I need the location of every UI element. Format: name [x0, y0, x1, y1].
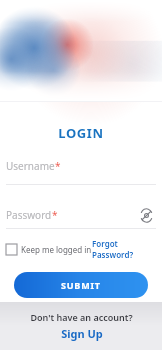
staticText: Username [6, 159, 55, 173]
staticText: Forgot Password? [92, 238, 156, 260]
staticText: * [52, 208, 58, 222]
staticText: * [55, 159, 61, 173]
button[interactable]: Forgot Password? [92, 238, 156, 260]
staticText: SUBMIT [61, 279, 101, 291]
button[interactable]: Show password [136, 205, 156, 225]
staticText: LOGIN [0, 124, 162, 142]
button[interactable]: Password [0, 205, 162, 229]
staticText: Don't have an account? [30, 311, 133, 323]
button[interactable]: Sign Up [61, 326, 103, 341]
button[interactable]: SUBMIT [14, 272, 148, 298]
button[interactable]: Keep me logged in [6, 244, 92, 255]
staticText: Password [6, 208, 52, 222]
button[interactable]: Username [0, 159, 162, 185]
staticText: Keep me logged in [21, 244, 92, 255]
staticText: Sign Up [61, 326, 103, 341]
